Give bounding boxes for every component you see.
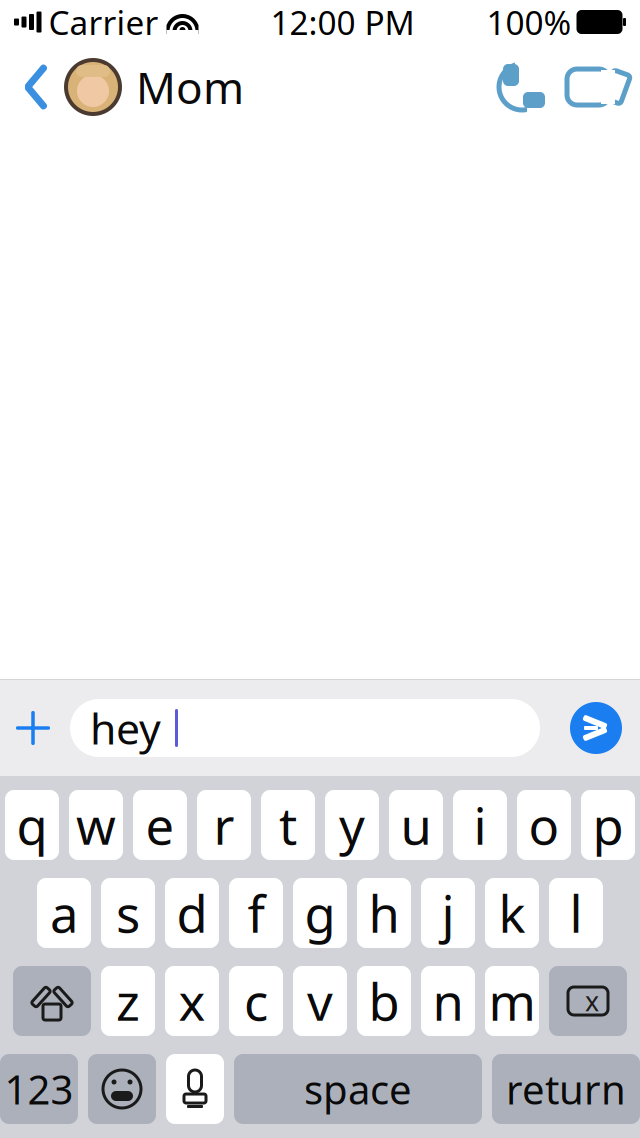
staticText: y — [339, 791, 365, 859]
button[interactable]: return — [492, 1054, 640, 1124]
button[interactable]: Video call — [558, 54, 634, 120]
button[interactable]: x — [165, 966, 219, 1036]
staticText: space — [304, 1062, 412, 1115]
button[interactable]: o — [517, 790, 571, 860]
staticText: a — [50, 879, 78, 947]
button[interactable]: e — [133, 790, 187, 860]
button[interactable]: n — [421, 966, 475, 1036]
button[interactable]: p — [581, 790, 635, 860]
staticText: b — [368, 967, 399, 1035]
staticText: 100% — [486, 0, 571, 44]
staticText: f — [247, 879, 264, 947]
button[interactable]: Add attachment — [0, 680, 70, 776]
button[interactable]: space — [234, 1054, 482, 1124]
staticText: t — [279, 791, 297, 859]
staticText: j — [441, 879, 454, 947]
staticText: z — [116, 967, 140, 1035]
staticText: h — [368, 879, 399, 947]
staticText: r — [213, 791, 234, 859]
button[interactable]: w — [69, 790, 123, 860]
button[interactable]: v — [293, 966, 347, 1036]
staticText: u — [400, 791, 431, 859]
button[interactable]: y — [325, 790, 379, 860]
staticText: 123 — [4, 1062, 73, 1115]
button[interactable]: q — [5, 790, 59, 860]
button[interactable]: Send — [548, 680, 640, 776]
staticText: p — [592, 791, 623, 859]
staticText: v — [307, 967, 333, 1035]
staticText: Mom — [136, 58, 244, 116]
button[interactable]: u — [389, 790, 443, 860]
staticText: m — [488, 967, 535, 1035]
button[interactable]: Dictate — [166, 1054, 224, 1124]
button[interactable]: h — [357, 878, 411, 948]
button[interactable]: hey — [70, 699, 540, 757]
staticText: o — [528, 791, 559, 859]
staticText: x — [585, 983, 599, 1019]
button[interactable]: d — [165, 878, 219, 948]
staticText: w — [76, 791, 116, 859]
button[interactable]: r — [197, 790, 251, 860]
button[interactable]: Shift — [13, 966, 91, 1036]
staticText: c — [244, 967, 268, 1035]
staticText: hey — [90, 700, 161, 756]
staticText: n — [432, 967, 463, 1035]
button[interactable]: s — [101, 878, 155, 948]
button[interactable]: z — [101, 966, 155, 1036]
button[interactable]: a — [37, 878, 91, 948]
staticText: k — [498, 879, 525, 947]
button[interactable]: Mom — [64, 58, 244, 116]
staticText: Carrier — [48, 0, 158, 44]
button[interactable]: g — [293, 878, 347, 948]
staticText: d — [176, 879, 207, 947]
staticText: l — [569, 879, 582, 947]
button[interactable]: Audio call — [486, 54, 558, 120]
staticText: s — [116, 879, 140, 947]
button[interactable]: Delete — [549, 966, 627, 1036]
button[interactable]: b — [357, 966, 411, 1036]
button[interactable]: t — [261, 790, 315, 860]
button[interactable]: f — [229, 878, 283, 948]
staticText: x — [178, 967, 205, 1035]
button[interactable]: Emoji — [88, 1054, 156, 1124]
button[interactable]: l — [549, 878, 603, 948]
staticText: q — [16, 791, 47, 859]
staticText: e — [145, 791, 174, 859]
button[interactable]: j — [421, 878, 475, 948]
staticText: g — [304, 879, 335, 947]
button[interactable]: k — [485, 878, 539, 948]
button[interactable]: 123 — [0, 1054, 78, 1124]
staticText: i — [473, 791, 486, 859]
staticText: 12:00 PM — [270, 0, 414, 44]
button[interactable]: i — [453, 790, 507, 860]
button[interactable]: c — [229, 966, 283, 1036]
button[interactable]: m — [485, 966, 539, 1036]
button[interactable]: Back — [8, 54, 64, 120]
staticText: return — [506, 1062, 626, 1115]
